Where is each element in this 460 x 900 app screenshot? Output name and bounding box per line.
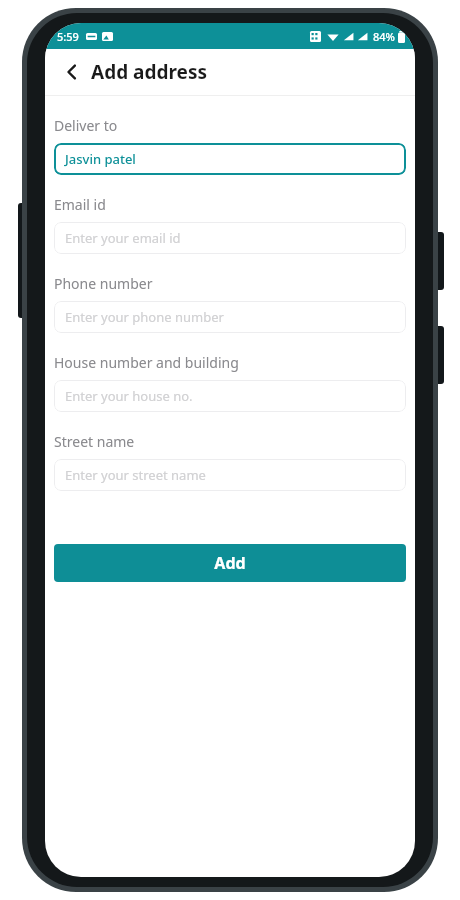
staticText: Jasvin patel: [65, 150, 136, 168]
staticText: Email id: [54, 195, 106, 214]
button[interactable]: Jasvin patel: [54, 143, 406, 175]
staticText: Deliver to: [54, 116, 118, 135]
staticText: Phone number: [54, 274, 153, 293]
staticText: Add address: [91, 59, 208, 85]
staticText: Street name: [54, 432, 135, 451]
button[interactable]: Add: [54, 544, 406, 582]
staticText: Enter your email id: [65, 229, 181, 247]
button[interactable]: Enter your street name: [54, 459, 406, 491]
staticText: 5:59: [57, 29, 79, 44]
staticText: Enter your street name: [65, 466, 206, 484]
button[interactable]: Enter your email id: [54, 222, 406, 254]
staticText: Add: [214, 552, 246, 574]
button[interactable]: Back: [57, 57, 87, 87]
staticText: Enter your phone number: [65, 308, 224, 326]
button[interactable]: Enter your house no.: [54, 380, 406, 412]
staticText: Enter your house no.: [65, 387, 193, 405]
staticText: House number and building: [54, 353, 239, 372]
staticText: 84%: [373, 29, 395, 44]
button[interactable]: Enter your phone number: [54, 301, 406, 333]
